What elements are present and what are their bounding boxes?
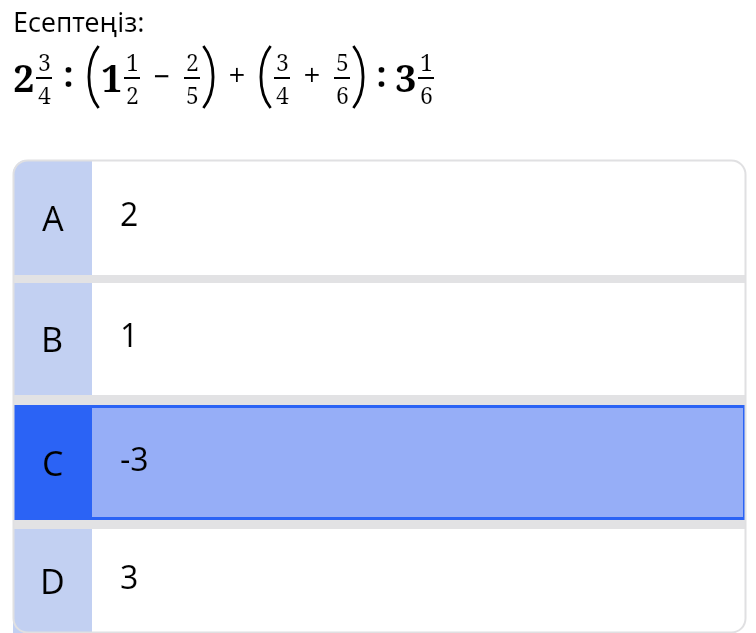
staticText: 3 <box>120 555 139 599</box>
button[interactable]: C <box>13 405 746 520</box>
staticText: A <box>42 195 64 241</box>
button[interactable]: A <box>13 160 746 275</box>
staticText: Есептеңіз: <box>13 3 145 40</box>
staticText: : <box>376 49 387 98</box>
staticText: 3 <box>395 51 417 103</box>
staticText: − <box>153 55 171 96</box>
staticText: 1 <box>101 51 123 103</box>
button[interactable]: B <box>13 283 746 395</box>
staticText: C <box>42 440 64 486</box>
staticText: 6 <box>336 79 349 108</box>
staticText: 2 <box>186 46 199 77</box>
staticText: 2 <box>120 192 139 236</box>
button[interactable]: D <box>13 529 746 633</box>
staticText: 3 <box>38 46 51 77</box>
staticText: 2 <box>126 79 139 108</box>
staticText: 5 <box>336 46 349 77</box>
staticText: + <box>228 53 246 97</box>
staticText: 1 <box>420 46 433 77</box>
staticText: : <box>63 49 74 98</box>
staticText: + <box>303 53 321 97</box>
staticText: D <box>40 558 65 604</box>
staticText: 5 <box>186 79 199 108</box>
staticText: 2 <box>13 51 35 103</box>
staticText: 1 <box>120 313 139 357</box>
staticText: 6 <box>420 79 433 108</box>
staticText: 3 <box>276 46 289 77</box>
staticText: B <box>41 316 64 362</box>
staticText: 4 <box>38 79 51 108</box>
staticText: 1 <box>126 46 139 77</box>
staticText: 4 <box>276 79 289 108</box>
staticText: -3 <box>120 437 149 481</box>
